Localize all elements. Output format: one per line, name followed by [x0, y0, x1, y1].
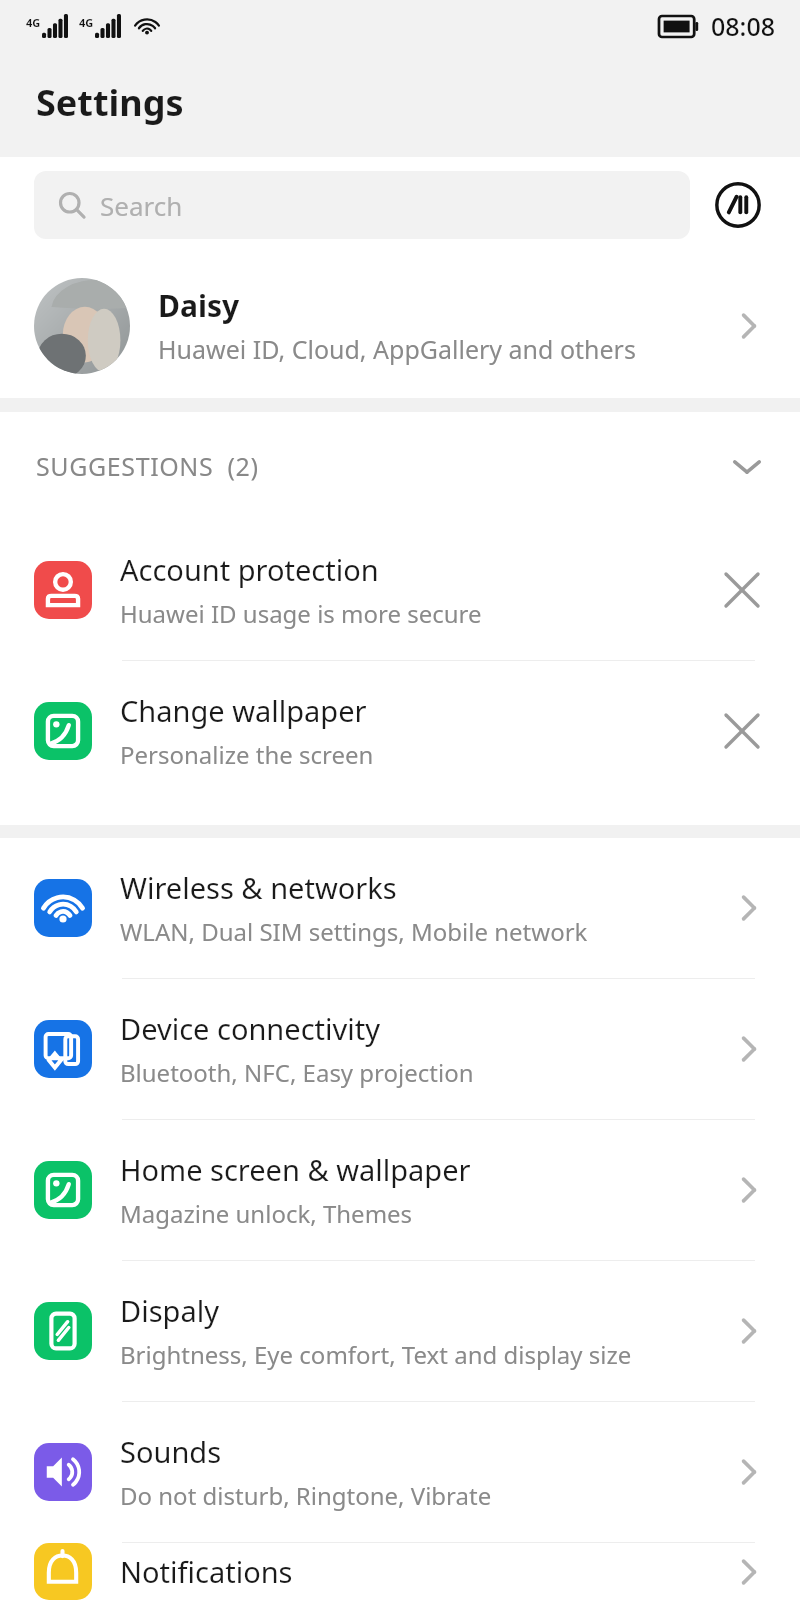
- button[interactable]: Wireless & networks: [0, 838, 800, 978]
- button[interactable]: Dismiss: [714, 703, 770, 759]
- button[interactable]: Sounds: [0, 1402, 800, 1542]
- staticText: Change wallpaper: [120, 691, 367, 730]
- staticText: Dispaly: [120, 1291, 219, 1330]
- button[interactable]: Daisy: [0, 253, 800, 398]
- staticText: Huawei ID usage is more secure: [120, 597, 482, 630]
- staticText: Daisy: [158, 285, 240, 326]
- staticText: Magazine unlock, Themes: [120, 1197, 413, 1230]
- staticText: Personalize the screen: [120, 738, 374, 771]
- staticText: Sounds: [120, 1432, 222, 1471]
- button[interactable]: Home screen & wallpaper: [0, 1120, 800, 1260]
- staticText: Home screen & wallpaper: [120, 1150, 471, 1189]
- button[interactable]: Dismiss: [714, 562, 770, 618]
- button[interactable]: Change wallpaper: [0, 661, 800, 801]
- staticText: Bluetooth, NFC, Easy projection: [120, 1056, 474, 1089]
- staticText: Account protection: [120, 550, 379, 589]
- button[interactable]: Scan: [710, 177, 766, 233]
- staticText: Device connectivity: [120, 1009, 380, 1048]
- staticText: Wireless & networks: [120, 868, 397, 907]
- staticText: 4G: [26, 15, 41, 30]
- button[interactable]: Search: [34, 171, 690, 239]
- staticText: Settings: [36, 78, 184, 127]
- staticText: Notifications: [120, 1552, 293, 1591]
- button[interactable]: Device connectivity: [0, 979, 800, 1119]
- staticText: 08:08: [711, 9, 776, 43]
- staticText: Huawei ID, Cloud, AppGallery and others: [158, 332, 636, 366]
- staticText: Search: [100, 188, 183, 223]
- button[interactable]: Notifications: [0, 1543, 800, 1600]
- staticText: Brightness, Eye comfort, Text and displa…: [120, 1338, 632, 1371]
- staticText: Do not disturb, Ringtone, Vibrate: [120, 1479, 492, 1512]
- button[interactable]: Dispaly: [0, 1261, 800, 1401]
- staticText: 4G: [79, 15, 94, 30]
- staticText: SUGGESTIONS (2): [36, 449, 259, 483]
- button[interactable]: SUGGESTIONS (2): [0, 412, 800, 520]
- staticText: WLAN, Dual SIM settings, Mobile network: [120, 915, 588, 948]
- button[interactable]: Account protection: [0, 520, 800, 660]
